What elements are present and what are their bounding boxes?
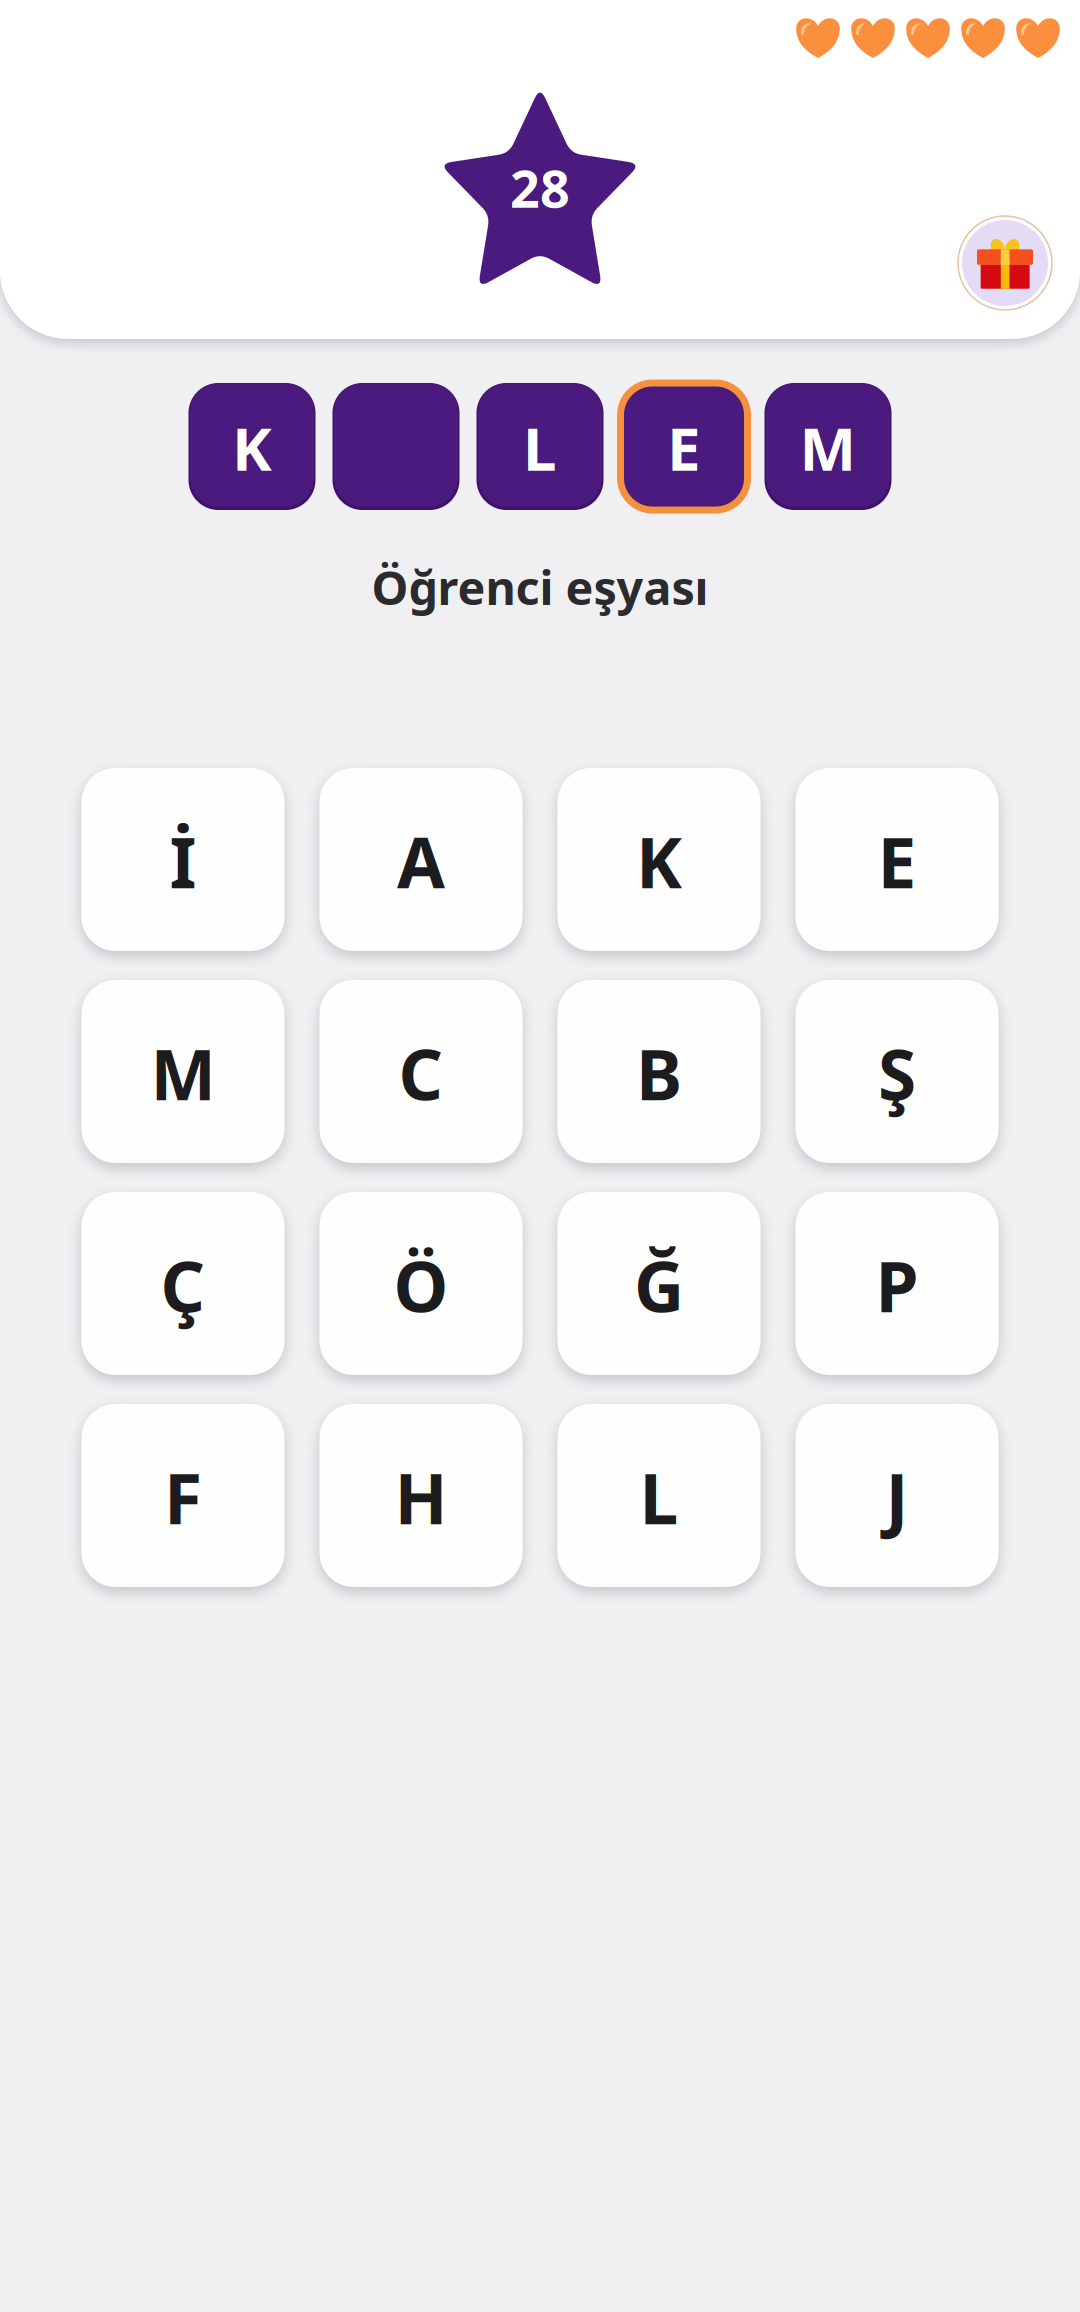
- button[interactable]: Ö: [319, 1192, 522, 1375]
- staticText: H: [394, 1451, 447, 1543]
- staticText: A: [397, 815, 445, 907]
- button[interactable]: Ç: [81, 1192, 284, 1375]
- button[interactable]: F: [81, 1404, 284, 1587]
- button[interactable]: Letter K: [188, 383, 315, 510]
- staticText: P: [875, 1239, 918, 1331]
- button[interactable]: K: [557, 768, 760, 951]
- button[interactable]: E: [795, 768, 998, 951]
- staticText: İ: [169, 815, 196, 907]
- button[interactable]: H: [319, 1404, 522, 1587]
- staticText: M: [150, 1027, 215, 1119]
- staticText: E: [667, 408, 701, 487]
- button[interactable]: B: [557, 980, 760, 1163]
- staticText: 28: [510, 153, 570, 222]
- staticText: J: [885, 1451, 908, 1543]
- button[interactable]: Ğ: [557, 1192, 760, 1375]
- button[interactable]: P: [795, 1192, 998, 1375]
- button[interactable]: Gift: [958, 216, 1052, 310]
- button[interactable]: C: [319, 980, 522, 1163]
- button[interactable]: İ: [81, 768, 284, 951]
- button[interactable]: M: [81, 980, 284, 1163]
- staticText: C: [398, 1027, 443, 1119]
- staticText: L: [639, 1451, 678, 1543]
- staticText: Öğrenci eşyası: [371, 556, 708, 618]
- button[interactable]: A: [319, 768, 522, 951]
- staticText: E: [877, 815, 916, 907]
- staticText: B: [636, 1027, 682, 1119]
- button[interactable]: Letter L: [476, 383, 603, 510]
- staticText: K: [636, 815, 682, 907]
- button[interactable]: Letter E: [620, 383, 747, 510]
- staticText: F: [164, 1451, 202, 1543]
- button[interactable]: Letter M: [764, 383, 891, 510]
- button[interactable]: L: [557, 1404, 760, 1587]
- button[interactable]: J: [795, 1404, 998, 1587]
- staticText: L: [523, 408, 557, 487]
- button[interactable]: Ş: [795, 980, 998, 1163]
- button[interactable]: Empty letter slot: [332, 383, 459, 510]
- staticText: Ç: [160, 1239, 205, 1331]
- staticText: K: [232, 408, 272, 487]
- staticText: M: [799, 408, 856, 487]
- staticText: Ö: [393, 1239, 448, 1331]
- staticText: Ş: [878, 1027, 916, 1119]
- staticText: Ğ: [634, 1239, 684, 1331]
